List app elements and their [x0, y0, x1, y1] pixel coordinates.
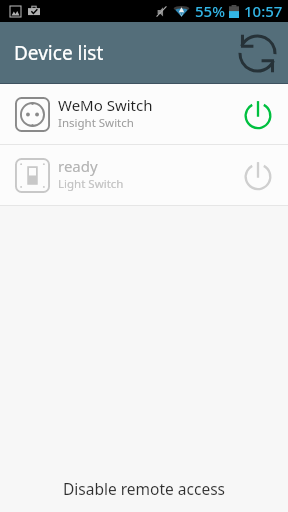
button[interactable]: Turn on ready: [232, 149, 284, 201]
staticText: 55%: [195, 1, 225, 21]
button[interactable]: Turn off WeMo Switch: [232, 88, 284, 140]
staticText: Insight Switch: [58, 115, 134, 131]
staticText: Disable remote access: [63, 478, 225, 499]
button[interactable]: WeMo Switch: [0, 84, 288, 144]
button[interactable]: Disable remote access: [0, 464, 288, 512]
staticText: Device list: [14, 40, 104, 66]
staticText: Light Switch: [58, 176, 124, 192]
button[interactable]: ready: [0, 145, 288, 205]
staticText: 10:57: [244, 1, 283, 21]
staticText: WeMo Switch: [58, 95, 153, 115]
staticText: ready: [58, 156, 98, 176]
button[interactable]: Refresh: [233, 29, 281, 77]
